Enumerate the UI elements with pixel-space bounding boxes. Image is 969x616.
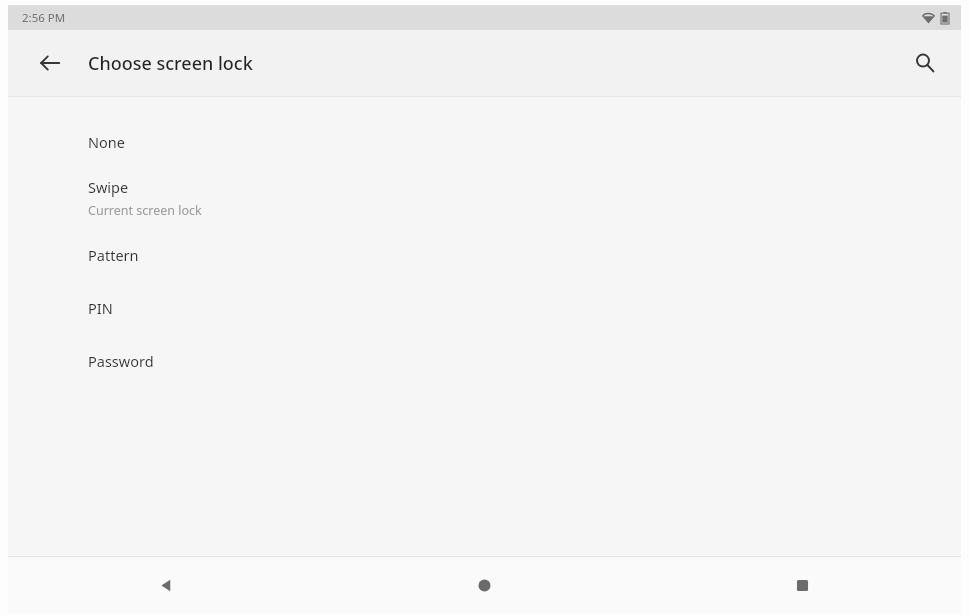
- button[interactable]: Back: [8, 557, 325, 613]
- button[interactable]: Home: [325, 557, 643, 613]
- button[interactable]: PIN: [8, 281, 961, 334]
- staticText: Pattern: [88, 245, 139, 265]
- staticText: 2:56 PM: [22, 10, 66, 26]
- button[interactable]: None: [8, 115, 961, 168]
- staticText: Choose screen lock: [88, 51, 253, 76]
- button[interactable]: Search: [903, 41, 947, 85]
- staticText: None: [88, 132, 125, 152]
- button[interactable]: Back: [28, 41, 72, 85]
- staticText: Swipe: [88, 177, 129, 197]
- staticText: PIN: [88, 298, 113, 318]
- button[interactable]: Swipe: [8, 168, 961, 228]
- button[interactable]: Pattern: [8, 228, 961, 281]
- button[interactable]: Recents: [643, 557, 961, 613]
- staticText: Password: [88, 351, 154, 371]
- button[interactable]: Password: [8, 334, 961, 387]
- staticText: Current screen lock: [88, 202, 202, 219]
